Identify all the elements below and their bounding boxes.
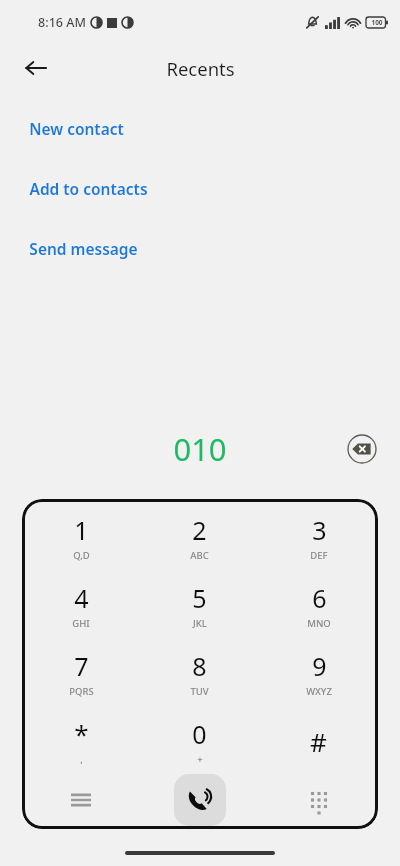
staticText: MNO <box>307 617 331 630</box>
staticText: 0 <box>192 717 207 751</box>
button[interactable]: 5 <box>140 571 259 639</box>
staticText: Add to contacts <box>29 178 148 199</box>
staticText: WXYZ <box>306 685 332 698</box>
button[interactable]: 1 <box>22 503 140 571</box>
staticText: 8:16 AM <box>38 14 86 31</box>
button[interactable]: 9 <box>259 639 378 707</box>
button[interactable]: 4 <box>22 571 140 639</box>
staticText: # <box>310 724 327 759</box>
staticText: 010 <box>173 428 227 470</box>
staticText: Send message <box>29 238 138 259</box>
staticText: 1 <box>74 513 89 547</box>
staticText: PQRS <box>69 685 94 698</box>
button[interactable]: Back <box>14 46 58 90</box>
staticText: 4 <box>74 581 89 615</box>
staticText: Recents <box>166 56 235 81</box>
staticText: + <box>197 753 203 766</box>
staticText: 9 <box>312 649 327 683</box>
staticText: TUV <box>190 685 209 698</box>
staticText: 8 <box>192 649 207 683</box>
staticText: 3 <box>312 513 327 547</box>
button[interactable]: Call <box>174 774 226 826</box>
staticText: JKL <box>193 617 207 630</box>
button[interactable]: Send message <box>0 228 400 268</box>
button[interactable]: Call log <box>22 771 140 829</box>
staticText: 100 <box>371 18 383 27</box>
button[interactable]: 0 <box>140 707 259 775</box>
staticText: 2 <box>192 513 207 547</box>
button[interactable]: 7 <box>22 639 140 707</box>
staticText: DEF <box>310 549 328 562</box>
button[interactable]: 8 <box>140 639 259 707</box>
button[interactable]: Add to contacts <box>0 168 400 208</box>
button[interactable]: Backspace <box>342 429 382 469</box>
staticText: New contact <box>29 118 124 139</box>
staticText: 5 <box>192 581 207 615</box>
button[interactable]: New contact <box>0 108 400 148</box>
button[interactable]: 3 <box>259 503 378 571</box>
button[interactable]: # <box>259 707 378 775</box>
staticText: 6 <box>312 581 327 615</box>
staticText: , <box>80 753 83 766</box>
button[interactable]: 6 <box>259 571 378 639</box>
staticText: 7 <box>74 649 89 683</box>
staticText: Q,D <box>73 549 90 562</box>
staticText: GHI <box>72 617 90 630</box>
button[interactable]: 2 <box>140 503 259 571</box>
staticText: ABC <box>190 549 209 562</box>
button[interactable]: * <box>22 707 140 775</box>
button[interactable]: Dialpad <box>259 771 378 829</box>
staticText: * <box>74 716 89 751</box>
